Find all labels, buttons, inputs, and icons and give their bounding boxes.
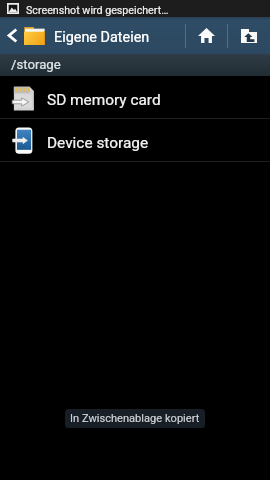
button[interactable]: SD memory card xyxy=(0,76,270,119)
staticText: In Zwischenablage kopiert xyxy=(70,412,200,425)
staticText: Eigene Dateien xyxy=(54,29,150,46)
button[interactable]: Eigene Dateien xyxy=(21,17,181,54)
staticText: Device storage xyxy=(47,134,149,152)
button[interactable]: Back xyxy=(0,17,21,54)
staticText: /storage xyxy=(11,57,61,72)
staticText: SD memory card xyxy=(47,91,161,109)
button[interactable]: Device storage xyxy=(0,119,270,162)
button[interactable]: Home xyxy=(186,17,227,54)
button[interactable]: /storage xyxy=(0,54,270,76)
button[interactable]: Up one level xyxy=(228,17,270,54)
staticText: Screenshot wird gespeichert… xyxy=(26,4,169,17)
